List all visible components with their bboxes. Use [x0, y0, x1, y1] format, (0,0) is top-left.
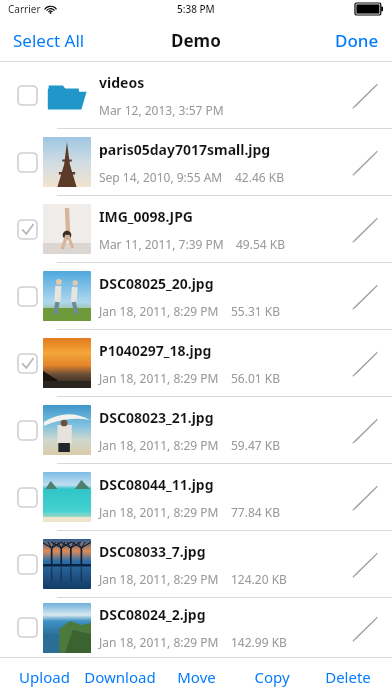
staticText: videos	[99, 73, 145, 92]
staticText: 124.20 KB	[231, 571, 287, 587]
button[interactable]: Select DSC08023_21.jpg	[0, 397, 392, 463]
button[interactable]: Select IMG_0098.JPG	[18, 220, 37, 239]
button[interactable]: Select videos	[18, 86, 37, 105]
staticText: P1040297_18.jpg	[99, 341, 212, 360]
staticText: 42.46 KB	[235, 169, 285, 185]
button[interactable]: Edit P1040297_18.jpg	[340, 338, 392, 388]
staticText: 49.54 KB	[236, 236, 286, 252]
staticText: Jan 18, 2011, 8:29 PM	[99, 571, 219, 587]
button[interactable]: Edit DSC08033_7.jpg	[340, 539, 392, 589]
button[interactable]: Edit videos	[340, 70, 392, 120]
staticText: Download	[84, 667, 156, 687]
button[interactable]: Select paris05day7017small.jpg	[0, 129, 392, 195]
button[interactable]: Edit DSC08044_11.jpg	[340, 472, 392, 522]
staticText: DSC08024_2.jpg	[99, 605, 206, 624]
staticText: 59.47 KB	[231, 437, 281, 453]
staticText: Mar 11, 2011, 7:39 PM	[99, 236, 224, 252]
button[interactable]: Edit IMG_0098.JPG	[340, 204, 392, 254]
button[interactable]: Select DSC08044_11.jpg	[18, 488, 37, 507]
button[interactable]: Download	[82, 657, 158, 696]
button[interactable]: Select DSC08033_7.jpg	[0, 531, 392, 597]
staticText: 5:38 PM	[177, 2, 215, 16]
button[interactable]: Edit DSC08025_20.jpg	[340, 271, 392, 321]
button[interactable]: Select DSC08024_2.jpg	[0, 598, 392, 657]
button[interactable]: Edit DSC08024_2.jpg	[340, 603, 392, 653]
staticText: 77.84 KB	[231, 504, 281, 520]
button[interactable]: Move	[158, 657, 234, 696]
staticText: 56.01 KB	[231, 370, 281, 386]
staticText: 55.31 KB	[231, 303, 281, 319]
staticText: Jan 18, 2011, 8:29 PM	[99, 504, 219, 520]
staticText: Carrier	[8, 2, 41, 16]
staticText: paris05day7017small.jpg	[99, 140, 271, 159]
staticText: DSC08033_7.jpg	[99, 542, 206, 561]
staticText: Sep 14, 2010, 9:55 AM	[99, 169, 223, 185]
button[interactable]: Select paris05day7017small.jpg	[18, 153, 37, 172]
staticText: Upload	[19, 667, 70, 687]
button[interactable]: Select P1040297_18.jpg	[18, 354, 37, 373]
staticText: Done	[335, 29, 379, 52]
staticText: Jan 18, 2011, 8:29 PM	[99, 437, 219, 453]
staticText: IMG_0098.JPG	[99, 207, 193, 226]
staticText: Jan 18, 2011, 8:29 PM	[99, 303, 219, 319]
button[interactable]: Select DSC08025_20.jpg	[0, 263, 392, 329]
staticText: 142.99 KB	[231, 634, 287, 650]
button[interactable]: Edit DSC08023_21.jpg	[340, 405, 392, 455]
button[interactable]: Select DSC08024_2.jpg	[18, 618, 37, 637]
button[interactable]: Done	[322, 21, 392, 60]
staticText: DSC08023_21.jpg	[99, 408, 214, 427]
button[interactable]: Select DSC08033_7.jpg	[18, 555, 37, 574]
staticText: Mar 12, 2013, 3:57 PM	[99, 102, 224, 118]
button[interactable]: Select DSC08025_20.jpg	[18, 287, 37, 306]
staticText: Jan 18, 2011, 8:29 PM	[99, 634, 219, 650]
button[interactable]: Edit paris05day7017small.jpg	[340, 137, 392, 187]
button[interactable]: Select All	[0, 21, 98, 60]
button[interactable]: Select DSC08044_11.jpg	[0, 464, 392, 530]
button[interactable]: Delete	[310, 657, 386, 696]
staticText: Copy	[254, 667, 290, 687]
button[interactable]: Select IMG_0098.JPG	[0, 196, 392, 262]
staticText: DSC08025_20.jpg	[99, 274, 214, 293]
staticText: Delete	[325, 667, 371, 687]
staticText: Jan 18, 2011, 8:29 PM	[99, 370, 219, 386]
button[interactable]: Select P1040297_18.jpg	[0, 330, 392, 396]
button[interactable]: Upload	[6, 657, 82, 696]
staticText: Select All	[13, 29, 85, 52]
staticText: DSC08044_11.jpg	[99, 475, 214, 494]
button[interactable]: Select DSC08023_21.jpg	[18, 421, 37, 440]
button[interactable]: Select videos	[0, 62, 392, 128]
staticText: Demo	[171, 29, 221, 52]
button[interactable]: Copy	[234, 657, 310, 696]
staticText: Move	[177, 667, 216, 687]
